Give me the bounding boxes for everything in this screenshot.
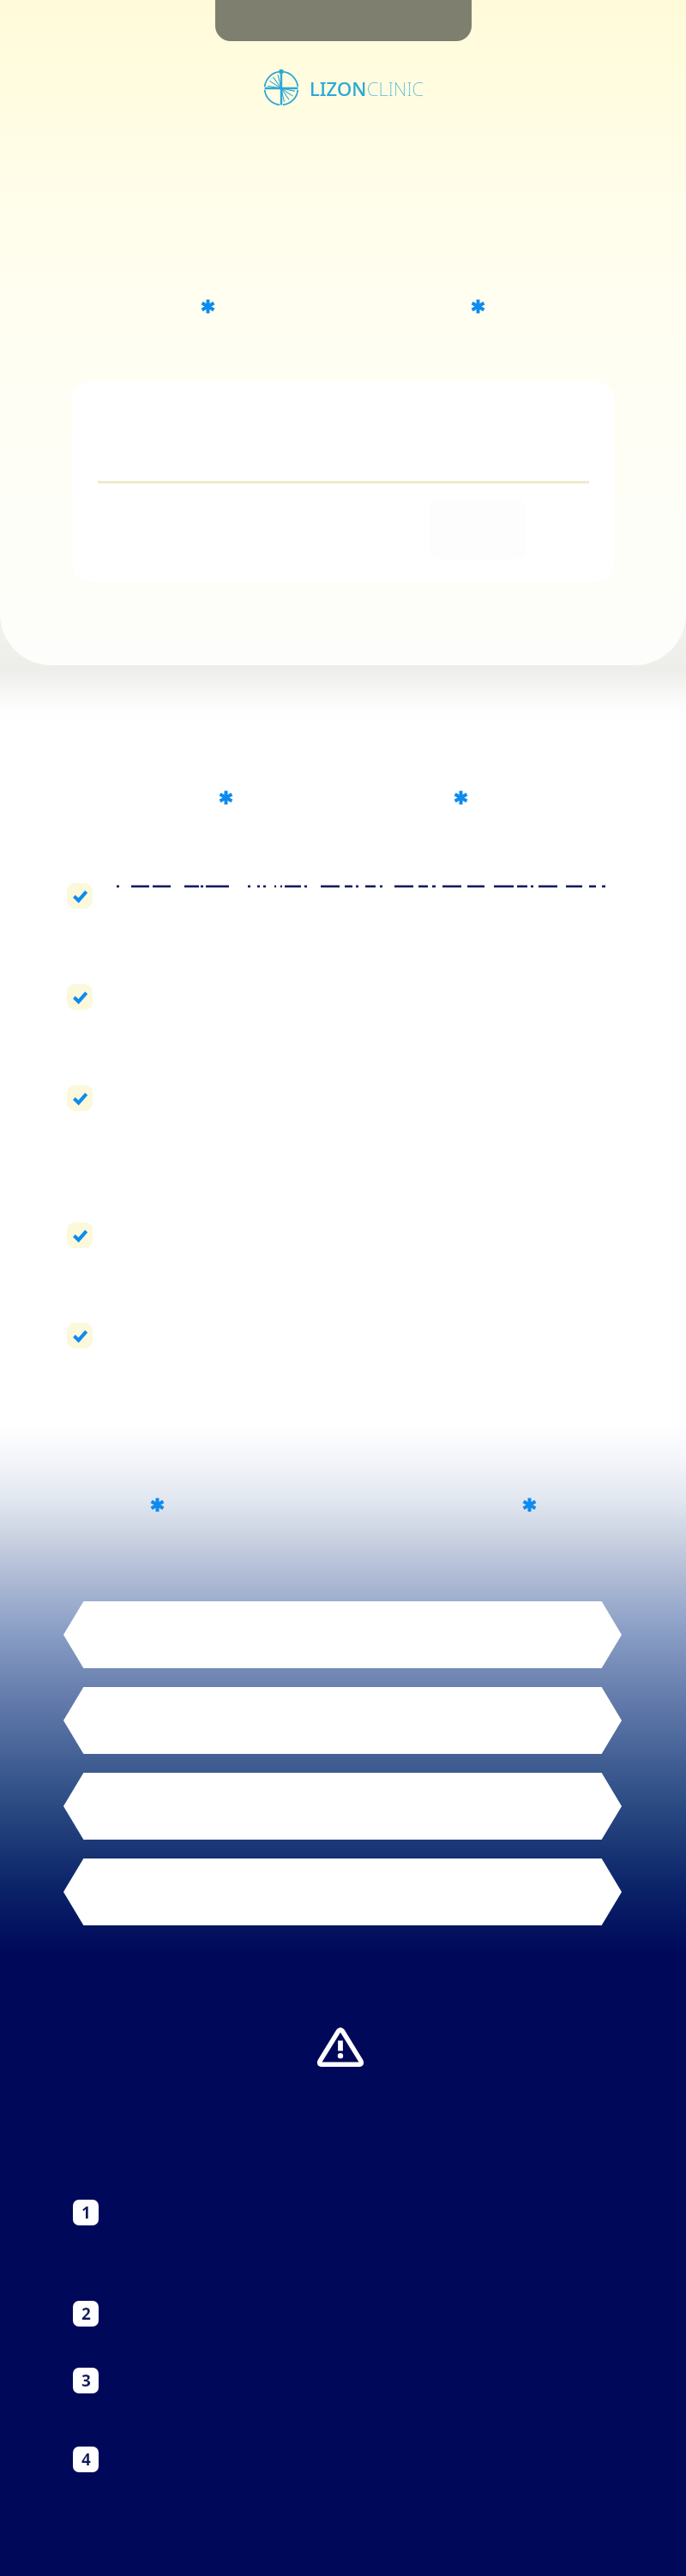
button[interactable]: Caution note 3: [73, 2368, 587, 2393]
button[interactable]: Caution note 1: [73, 2200, 587, 2225]
other: Warning: [316, 2025, 365, 2069]
button[interactable]: Treatment step 3: [63, 1773, 622, 1840]
button[interactable]: Recommended point 4: [67, 1222, 599, 1248]
button[interactable]: Treatment step 2: [63, 1687, 622, 1754]
button[interactable]: Treatment step 4: [63, 1858, 622, 1925]
staticText: CLINIC: [367, 75, 424, 101]
button[interactable]: Recommended point 1: [67, 883, 599, 909]
button[interactable]: Clinic hours and reservation card: [72, 381, 614, 582]
button[interactable]: Caution note 2: [73, 2301, 587, 2327]
staticText: LIZON: [310, 75, 367, 101]
staticText: 1: [81, 2201, 91, 2224]
button[interactable]: Recommended point 2: [67, 984, 599, 1010]
staticText: 4: [81, 2448, 91, 2471]
button[interactable]: Recommended point 5: [67, 1323, 599, 1348]
button[interactable]: Treatment step 1: [63, 1601, 622, 1668]
button[interactable]: LIZON CLINIC home: [263, 70, 424, 106]
staticText: 2: [81, 2303, 91, 2325]
button[interactable]: Caution note 4: [73, 2447, 587, 2472]
staticText: 3: [81, 2369, 91, 2392]
button[interactable]: Recommended point 3: [67, 1085, 599, 1111]
